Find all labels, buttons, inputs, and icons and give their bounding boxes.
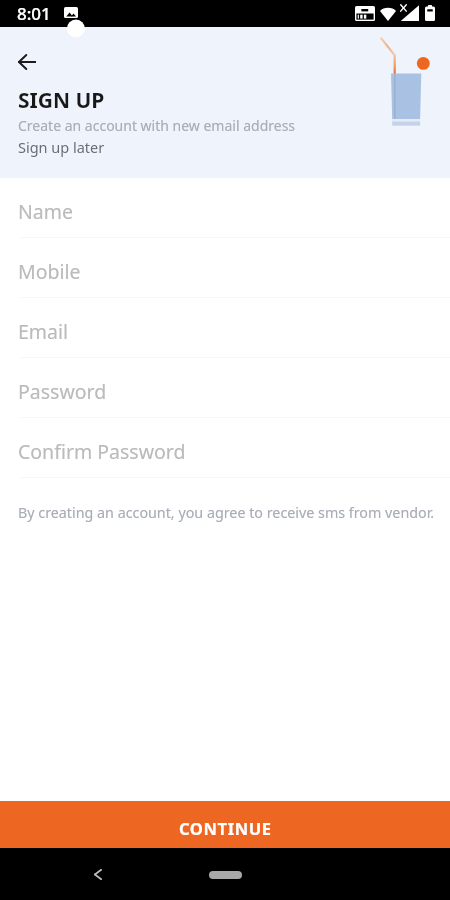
button[interactable]: Password — [0, 358, 450, 418]
button[interactable]: Home — [209, 871, 242, 879]
button[interactable]: Back — [6, 41, 48, 83]
staticText: Name — [18, 198, 73, 225]
button[interactable]: CONTINUE — [0, 801, 450, 848]
staticText: Confirm Password — [18, 438, 186, 465]
staticText: Mobile — [18, 258, 81, 285]
button[interactable]: Confirm Password — [0, 418, 450, 478]
button[interactable]: Back — [80, 856, 116, 892]
button[interactable]: Mobile — [0, 238, 450, 298]
staticText: CONTINUE — [179, 817, 272, 839]
staticText: Password — [18, 378, 107, 405]
button[interactable]: Sign up later — [18, 137, 105, 157]
staticText: Sign up later — [18, 137, 105, 157]
staticText: By creating an account, you agree to rec… — [18, 503, 435, 522]
staticText: Email — [18, 318, 69, 345]
button[interactable]: Email — [0, 298, 450, 358]
staticText: 8:01 — [17, 2, 51, 25]
button[interactable]: Name — [0, 178, 450, 238]
staticText: SIGN UP — [18, 86, 105, 115]
staticText: Create an account with new email address — [18, 116, 296, 135]
